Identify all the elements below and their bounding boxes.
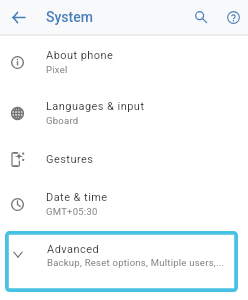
staticText: Date & time bbox=[46, 191, 108, 204]
staticText: About phone bbox=[46, 49, 114, 62]
staticText: Advanced bbox=[47, 243, 100, 256]
staticText: Gboard bbox=[46, 115, 79, 126]
button[interactable]: About phone bbox=[0, 36, 248, 88]
staticText: Backup, Reset options, Multiple users,..… bbox=[47, 257, 225, 268]
button[interactable]: Back bbox=[6, 5, 30, 29]
staticText: Languages & input bbox=[46, 100, 145, 113]
staticText: Gestures bbox=[46, 153, 94, 166]
staticText: Pixel bbox=[46, 64, 68, 75]
button[interactable]: Languages & input bbox=[0, 87, 248, 139]
button[interactable]: Gestures bbox=[0, 140, 248, 179]
button[interactable]: Date & time bbox=[0, 178, 248, 230]
button[interactable]: Help bbox=[221, 5, 245, 29]
staticText: System bbox=[46, 9, 93, 25]
button[interactable]: Advanced bbox=[5, 231, 238, 292]
staticText: GMT+05:30 bbox=[46, 206, 98, 217]
button[interactable]: Search bbox=[189, 5, 213, 29]
